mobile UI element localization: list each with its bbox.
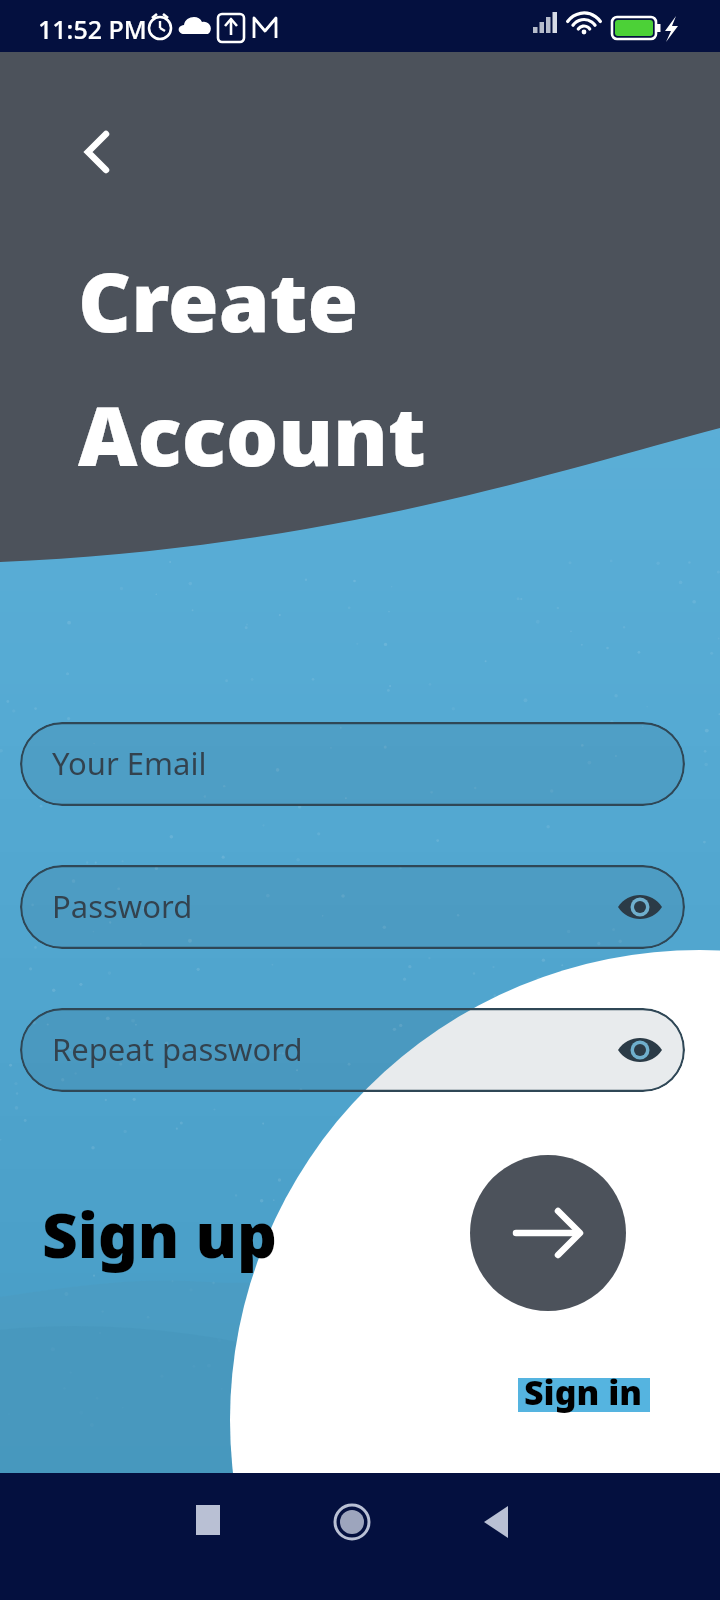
- staticText: 11:52 PM: [38, 12, 147, 46]
- staticText: Sign up: [42, 1192, 277, 1276]
- button[interactable]: Sign in: [510, 1364, 656, 1420]
- staticText: Password: [52, 885, 193, 927]
- staticText: Repeat password: [52, 1028, 303, 1070]
- button[interactable]: Back: [66, 120, 130, 184]
- staticText: Your Email: [52, 742, 207, 784]
- button[interactable]: Password: [20, 865, 685, 949]
- button[interactable]: Repeat password: [20, 1008, 685, 1092]
- button[interactable]: Continue: [470, 1155, 626, 1311]
- button[interactable]: Your Email: [20, 722, 685, 806]
- staticText: Create: [78, 244, 359, 356]
- staticText: Sign in: [524, 1369, 642, 1415]
- staticText: Account: [78, 378, 426, 490]
